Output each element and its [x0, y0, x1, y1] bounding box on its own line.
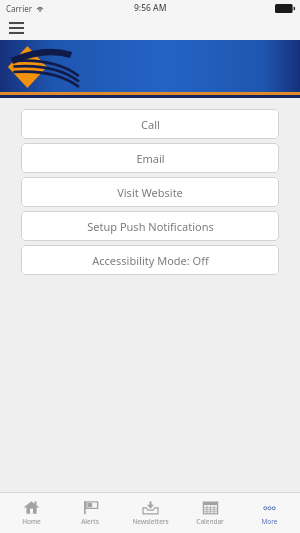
button[interactable]: Calendar	[181, 500, 239, 526]
button[interactable]: Home	[2, 500, 60, 526]
button[interactable]: Email	[21, 143, 279, 173]
staticText: Home	[22, 517, 41, 526]
button[interactable]: Setup Push Notifications	[21, 211, 279, 241]
staticText: Setup Push Notifications	[87, 219, 214, 234]
staticText: Visit Website	[117, 185, 183, 200]
staticText: Email	[136, 151, 165, 166]
staticText: Accessibility Mode: Off	[92, 253, 209, 268]
staticText: Alerts	[81, 517, 99, 526]
button[interactable]: Accessibility Mode: Off	[21, 245, 279, 275]
button[interactable]: More	[240, 500, 298, 526]
staticText: Carrier	[6, 3, 33, 14]
button[interactable]: Visit Website	[21, 177, 279, 207]
button[interactable]: Call	[21, 109, 279, 139]
button[interactable]: Alerts	[61, 500, 119, 526]
button[interactable]: Menu	[4, 16, 28, 40]
staticText: Calendar	[196, 517, 224, 526]
staticText: Newsletters	[132, 517, 169, 526]
button[interactable]: Newsletters	[121, 500, 179, 526]
staticText: More	[261, 517, 278, 526]
staticText: 9:56 AM	[134, 2, 167, 14]
staticText: Call	[141, 117, 160, 132]
